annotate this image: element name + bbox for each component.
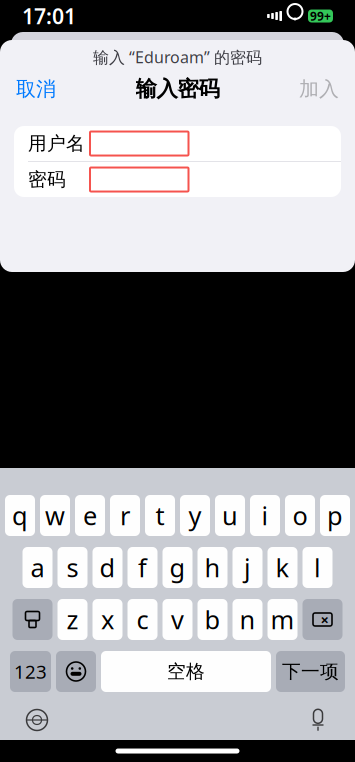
staticText: y [188, 499, 201, 532]
button[interactable]: Dictation [303, 705, 333, 735]
button[interactable]: e [75, 495, 105, 536]
staticText: 加入 [299, 77, 339, 101]
button[interactable]: Delete [302, 599, 342, 640]
button[interactable]: z [57, 599, 87, 640]
staticText: 用户名 [28, 132, 85, 155]
staticText: m [270, 603, 294, 636]
button[interactable]: q [5, 495, 35, 536]
staticText: 17:01 [22, 2, 76, 30]
button[interactable]: i [250, 495, 280, 536]
staticText: 123 [14, 659, 47, 684]
button[interactable]: m [267, 599, 297, 640]
button[interactable]: r [110, 495, 140, 536]
staticText: z [66, 603, 78, 636]
staticText: v [171, 603, 184, 636]
button[interactable]: u [215, 495, 245, 536]
button[interactable]: w [40, 495, 70, 536]
staticText: u [222, 499, 238, 532]
button[interactable]: s [57, 547, 87, 588]
staticText: e [83, 499, 97, 532]
staticText: n [239, 603, 255, 636]
button[interactable]: g [162, 547, 192, 588]
button[interactable]: o [285, 495, 315, 536]
button[interactable]: 123 [10, 651, 51, 692]
button[interactable]: n [232, 599, 262, 640]
staticText: p [327, 499, 343, 532]
staticText: 下一项 [282, 660, 339, 683]
staticText: w [45, 499, 65, 532]
staticText: o [292, 499, 307, 532]
staticText: r [120, 499, 130, 532]
button[interactable]: p [320, 495, 350, 536]
staticText: a [30, 551, 44, 584]
staticText: l [314, 551, 321, 584]
staticText: 空格 [167, 660, 205, 683]
staticText: 99+ [310, 8, 331, 24]
staticText: 密码 [28, 168, 66, 191]
staticText: 输入密码 [135, 76, 219, 102]
button[interactable]: v [162, 599, 192, 640]
button[interactable]: t [145, 495, 175, 536]
button[interactable]: y [180, 495, 210, 536]
staticText: d [99, 551, 115, 584]
button[interactable]: 加入 [283, 71, 355, 107]
button[interactable]: j [232, 547, 262, 588]
staticText: 输入 “Eduroam” 的密码 [93, 46, 262, 68]
button[interactable]: k [267, 547, 297, 588]
staticText: t [155, 499, 164, 532]
staticText: c [136, 603, 148, 636]
staticText: j [244, 551, 251, 584]
button[interactable]: 密码 [14, 162, 341, 197]
button[interactable]: l [302, 547, 332, 588]
button[interactable]: Emoji [56, 651, 96, 692]
button[interactable]: c [127, 599, 157, 640]
button[interactable]: 用户名 [14, 126, 341, 161]
button[interactable]: f [127, 547, 157, 588]
button[interactable]: x [92, 599, 122, 640]
button[interactable]: Shift [12, 599, 52, 640]
button[interactable]: 取消 [0, 71, 72, 107]
staticText: b [204, 603, 220, 636]
staticText: i [261, 499, 268, 532]
button[interactable]: a [22, 547, 52, 588]
staticText: x [101, 603, 114, 636]
staticText: k [275, 551, 289, 584]
staticText: s [66, 551, 78, 584]
button[interactable]: d [92, 547, 122, 588]
staticText: g [169, 551, 185, 584]
staticText: h [204, 551, 220, 584]
staticText: f [138, 551, 147, 584]
staticText: q [12, 499, 28, 532]
button[interactable]: 下一项 [276, 651, 345, 692]
button[interactable]: 空格 [101, 651, 271, 692]
button[interactable]: Switch keyboard [22, 705, 52, 735]
staticText: 取消 [16, 77, 56, 101]
button[interactable]: b [197, 599, 227, 640]
staticText: × [320, 610, 328, 629]
button[interactable]: h [197, 547, 227, 588]
